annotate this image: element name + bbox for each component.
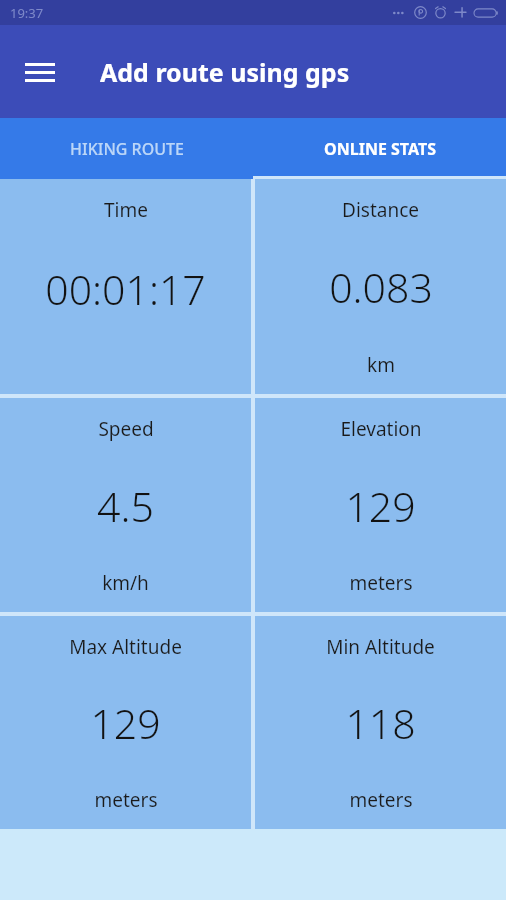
staticText: km/h	[102, 570, 149, 596]
button[interactable]: Time	[0, 179, 251, 394]
button[interactable]: Elevation	[255, 398, 506, 612]
staticText: 129	[90, 695, 161, 751]
staticText: meters	[349, 570, 413, 596]
staticText: HIKING ROUTE	[70, 138, 184, 160]
staticText: ONLINE STATS	[324, 138, 436, 160]
staticText: Speed	[98, 416, 154, 442]
button[interactable]: Min Altitude	[255, 616, 506, 829]
staticText: Max Altitude	[69, 634, 182, 660]
staticText: 118	[345, 695, 416, 751]
button[interactable]: Distance	[255, 179, 506, 394]
button[interactable]: HIKING ROUTE	[0, 118, 253, 179]
staticText: 0.083	[329, 259, 433, 315]
staticText: meters	[94, 787, 158, 813]
staticText: 19:37	[10, 4, 44, 22]
staticText: meters	[349, 787, 413, 813]
staticText: Distance	[342, 197, 419, 223]
button[interactable]: Open navigation menu	[13, 45, 67, 99]
staticText: 4.5	[97, 478, 154, 534]
staticText: Time	[104, 197, 148, 223]
staticText: 00:01:17	[45, 261, 206, 317]
staticText: km	[367, 352, 395, 378]
button[interactable]: ONLINE STATS	[253, 118, 506, 179]
staticText: Add route using gps	[100, 55, 350, 89]
staticText: Elevation	[340, 416, 422, 442]
staticText: Min Altitude	[326, 634, 435, 660]
button[interactable]: Max Altitude	[0, 616, 251, 829]
button[interactable]: Speed	[0, 398, 251, 612]
staticText: 129	[345, 478, 416, 534]
